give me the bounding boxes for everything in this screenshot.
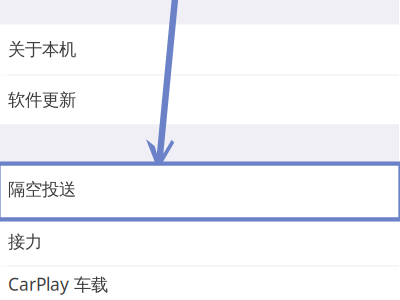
button[interactable]: 接力 [0,218,399,265]
staticText: 软件更新 [8,89,76,111]
button[interactable]: 关于本机 [0,24,399,74]
staticText: 关于本机 [8,39,76,60]
button[interactable]: 软件更新 [0,75,399,124]
button[interactable]: CarPlay 车载 [0,266,399,300]
staticText: 隔空投送 [8,179,76,200]
button[interactable]: 隔空投送 [0,161,399,217]
staticText: CarPlay 车载 [8,272,108,296]
staticText: 接力 [8,231,42,253]
